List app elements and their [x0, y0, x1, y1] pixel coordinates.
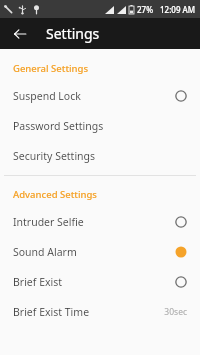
button[interactable]: Sound Alarm [0, 237, 200, 267]
staticText: Suspend Lock [13, 89, 175, 103]
staticText: Password Settings [13, 119, 175, 133]
staticText: Brief Exist [13, 275, 175, 289]
staticText: Sound Alarm [13, 245, 175, 259]
button[interactable]: Intruder Selfie [0, 207, 200, 237]
staticText: Brief Exist Time [13, 305, 164, 319]
staticText: 27% [137, 4, 153, 15]
button[interactable]: Brief Exist [0, 267, 200, 297]
staticText: 12:09 AM [160, 4, 196, 15]
staticText: Intruder Selfie [13, 215, 175, 229]
staticText: Settings [46, 24, 100, 43]
button[interactable]: Brief Exist Time [0, 297, 200, 327]
staticText: Security Settings [13, 149, 175, 163]
button[interactable]: Back [7, 21, 33, 47]
button[interactable]: Password Settings [0, 111, 200, 141]
button[interactable]: Security Settings [0, 141, 200, 171]
button[interactable]: Suspend Lock [0, 81, 200, 111]
staticText: 30sec [164, 306, 187, 318]
staticText: General Settings [13, 62, 89, 75]
staticText: Advanced Settings [13, 188, 97, 201]
